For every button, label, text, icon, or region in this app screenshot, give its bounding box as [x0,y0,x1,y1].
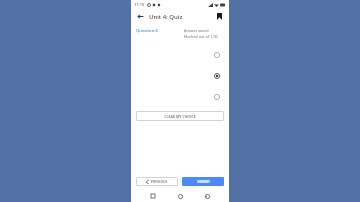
staticText: Answer saved [184,28,209,33]
button[interactable]: Back [135,11,146,22]
staticText: SUBMIT [197,179,210,184]
button[interactable]: Home [175,191,185,201]
button[interactable]: Question 4 [136,28,158,34]
staticText: CLEAR MY CHOICE [164,114,196,119]
staticText: PREVIOUS [151,179,168,184]
button[interactable]: Recent apps [148,191,158,201]
button[interactable] [136,92,224,101]
button[interactable] [136,50,224,59]
button[interactable] [136,71,224,80]
staticText: 11:15 [134,2,145,7]
staticText: Unit 4: Quiz [149,13,183,21]
button[interactable]: CLEAR MY CHOICE [136,111,224,121]
button[interactable]: PREVIOUS [136,177,178,186]
button[interactable]: Bookmark [214,11,225,22]
staticText: Marked out of 1.00 [184,34,218,39]
button[interactable]: SUBMIT [182,177,224,186]
button[interactable]: Back [202,191,212,201]
